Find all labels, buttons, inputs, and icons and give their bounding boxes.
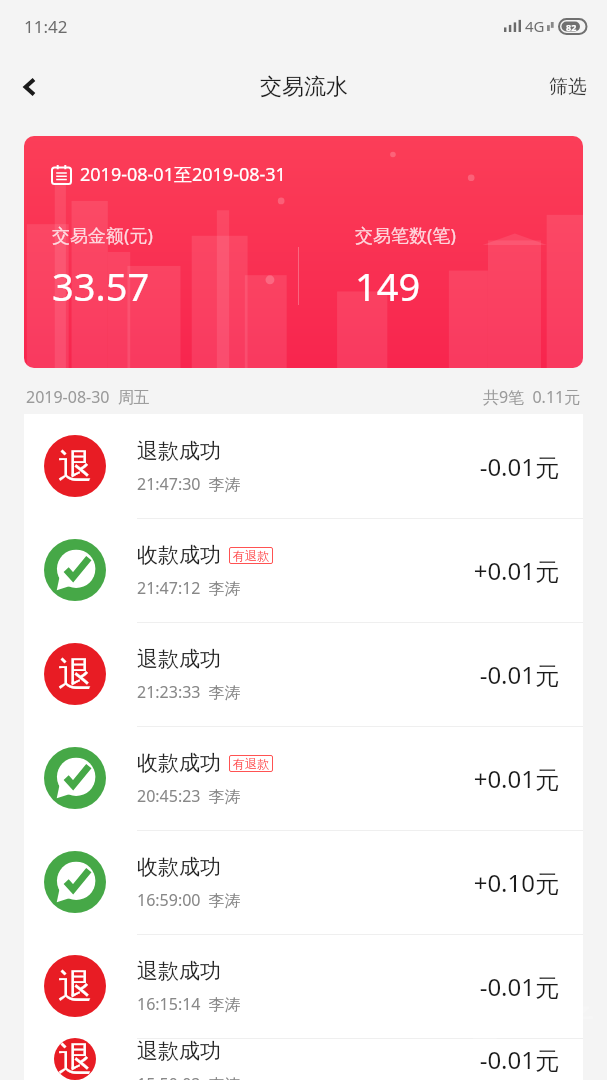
staticText: 11:42 xyxy=(24,15,68,38)
button[interactable]: 收款成功 xyxy=(24,726,583,830)
button[interactable]: 退 xyxy=(24,622,583,726)
button[interactable]: 收款成功 xyxy=(24,830,583,934)
staticText: 退款成功 xyxy=(137,958,221,984)
staticText: -0.01元 xyxy=(479,658,559,691)
staticText: 2019-08-01至2019-08-31 xyxy=(80,162,286,187)
staticText: 7YZ.COM xyxy=(515,1036,570,1054)
staticText: 有退款 xyxy=(233,756,269,771)
staticText: 收款成功 xyxy=(137,854,221,880)
staticText: 退 xyxy=(58,1038,92,1080)
staticText: 收款成功 xyxy=(137,542,221,568)
staticText: 交易金额(元) xyxy=(52,223,153,248)
staticText: 筛选 xyxy=(549,75,587,99)
staticText: 有退款 xyxy=(233,548,269,563)
staticText: 交易流水 xyxy=(260,73,348,101)
button[interactable]: Back xyxy=(0,57,60,117)
staticText: 20:45:23 李涛 xyxy=(137,785,241,807)
staticText: 21:47:12 李涛 xyxy=(137,577,241,599)
staticText: +0.01元 xyxy=(473,554,559,587)
button[interactable]: 退 xyxy=(24,1038,583,1080)
staticText: 退款成功 xyxy=(137,1038,221,1064)
staticText: 退 xyxy=(58,965,92,1008)
staticText: 退款成功 xyxy=(137,646,221,672)
staticText: 4G xyxy=(525,16,545,36)
staticText: -0.01元 xyxy=(479,450,559,483)
button[interactable]: 收款成功 xyxy=(24,518,583,622)
staticText: 15:50:02 李涛 xyxy=(137,1073,241,1080)
staticText: -0.01元 xyxy=(479,1043,559,1076)
staticText: +0.01元 xyxy=(473,762,559,795)
staticText: 33.57 xyxy=(52,260,150,312)
staticText: 16:15:14 李涛 xyxy=(137,993,241,1015)
button[interactable]: 退 xyxy=(24,414,583,518)
staticText: -0.01元 xyxy=(479,970,559,1003)
staticText: 退 xyxy=(58,653,92,696)
staticText: 收款成功 xyxy=(137,750,221,776)
staticText: 2019-08-30 周五 xyxy=(26,386,150,408)
staticText: 退款成功 xyxy=(137,438,221,464)
button[interactable]: 退 xyxy=(24,934,583,1038)
staticText: 交易笔数(笔) xyxy=(355,223,456,248)
staticText: 149 xyxy=(355,260,421,312)
staticText: 共9笔 0.11元 xyxy=(483,386,581,408)
staticText: 退 xyxy=(58,445,92,488)
button[interactable]: 2019-08-01至2019-08-31 xyxy=(24,136,583,368)
staticText: 21:23:33 李涛 xyxy=(137,681,241,703)
staticText: 16:59:00 李涛 xyxy=(137,889,241,911)
staticText: 82 xyxy=(566,21,577,33)
staticText: 21:47:30 李涛 xyxy=(137,473,241,495)
button[interactable]: 筛选 xyxy=(529,63,607,111)
staticText: +0.10元 xyxy=(473,866,559,899)
staticText: 七叶子 xyxy=(515,1003,593,1036)
